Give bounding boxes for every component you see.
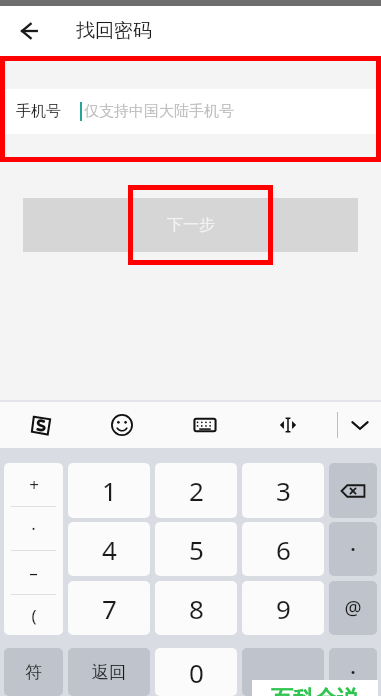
- staticText: 4: [102, 532, 117, 567]
- button[interactable]: Keyboard layout: [186, 406, 224, 444]
- button[interactable]: 3: [242, 463, 324, 518]
- button[interactable]: ·: [329, 648, 377, 696]
- button[interactable]: 返回: [68, 648, 150, 696]
- button[interactable]: 2: [155, 463, 237, 518]
- button[interactable]: [242, 648, 324, 696]
- button[interactable]: 6: [242, 522, 324, 576]
- staticText: 5: [189, 532, 204, 567]
- staticText: 0: [189, 655, 204, 690]
- staticText: 8: [189, 591, 204, 626]
- button[interactable]: Back: [6, 9, 50, 53]
- button[interactable]: +: [4, 463, 63, 635]
- staticText: (: [31, 604, 37, 627]
- button[interactable]: 8: [155, 581, 237, 635]
- button[interactable]: 4: [68, 522, 150, 576]
- staticText: 下一步: [167, 215, 215, 235]
- button[interactable]: Backspace: [329, 463, 377, 518]
- staticText: @: [344, 595, 362, 621]
- staticText: 仅支持中国大陆手机号: [84, 102, 234, 121]
- staticText: 2: [189, 473, 204, 508]
- button[interactable]: 下一步: [23, 198, 358, 252]
- staticText: 返回: [92, 662, 126, 683]
- staticText: 3: [276, 473, 291, 508]
- button[interactable]: 7: [68, 581, 150, 635]
- button[interactable]: Emoji: [103, 406, 141, 444]
- button[interactable]: @: [329, 581, 377, 635]
- staticText: 百科全说: [271, 685, 359, 696]
- staticText: 手机号: [16, 102, 61, 121]
- staticText: 符: [25, 662, 42, 683]
- staticText: ·: [350, 660, 356, 685]
- staticText: 6: [276, 532, 291, 567]
- button[interactable]: Sogou input: [22, 406, 60, 444]
- staticText: 找回密码: [76, 19, 152, 43]
- button[interactable]: 手机号: [0, 89, 381, 134]
- staticText: ·: [350, 537, 356, 562]
- button[interactable]: Move cursor: [269, 406, 307, 444]
- button[interactable]: ·: [329, 522, 377, 576]
- button[interactable]: 1: [68, 463, 150, 518]
- button[interactable]: 0: [155, 648, 237, 696]
- button[interactable]: 5: [155, 522, 237, 576]
- button[interactable]: 符: [4, 648, 63, 696]
- staticText: +: [29, 473, 39, 496]
- staticText: ·: [31, 517, 36, 540]
- staticText: –: [29, 561, 38, 584]
- staticText: 1: [102, 473, 117, 508]
- staticText: 7: [102, 591, 117, 626]
- button[interactable]: Hide keyboard: [341, 406, 379, 444]
- button[interactable]: 9: [242, 581, 324, 635]
- staticText: 9: [276, 591, 291, 626]
